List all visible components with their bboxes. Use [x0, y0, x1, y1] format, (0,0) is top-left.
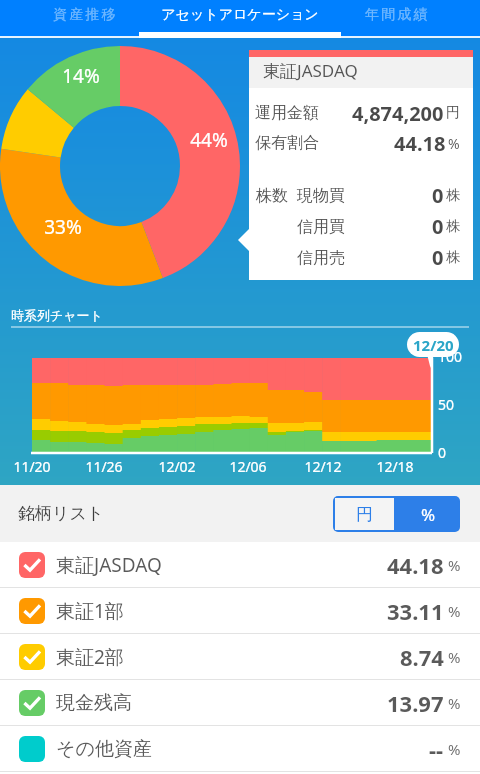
staticText: 33.11: [387, 596, 444, 626]
button[interactable]: 年間成績: [302, 0, 480, 30]
staticText: 時系列チャート: [11, 307, 103, 323]
button[interactable]: 現金残高: [0, 680, 480, 725]
staticText: %: [448, 134, 460, 153]
staticText: 0: [432, 182, 444, 209]
staticText: 運用金額: [255, 103, 319, 123]
staticText: 資産推移: [53, 6, 118, 24]
staticText: 円: [356, 504, 373, 525]
staticText: 12/02: [158, 457, 196, 476]
staticText: その他資産: [56, 737, 152, 761]
staticText: 株数: [256, 186, 288, 206]
button[interactable]: 資産推移: [0, 0, 180, 30]
staticText: 14%: [62, 63, 100, 89]
staticText: 13.97: [387, 688, 444, 718]
button[interactable]: アセットアロケーション: [145, 0, 335, 30]
staticText: 12/06: [229, 457, 267, 476]
staticText: 信用売: [297, 248, 345, 268]
staticText: 株: [446, 187, 460, 205]
staticText: 8.74: [400, 642, 444, 672]
staticText: 100: [438, 347, 463, 366]
staticText: 現金残高: [56, 691, 132, 715]
staticText: 0: [438, 443, 447, 462]
button[interactable]: 円: [335, 498, 394, 530]
staticText: 12/18: [376, 457, 414, 476]
staticText: 東証JASDAQ: [56, 552, 162, 578]
staticText: 44%: [190, 127, 228, 153]
button[interactable]: %: [396, 496, 460, 532]
staticText: 銘柄リスト: [18, 503, 105, 524]
staticText: 12/20: [413, 335, 454, 355]
staticText: %: [448, 555, 461, 575]
staticText: 44.18: [387, 550, 444, 580]
staticText: 円: [446, 104, 460, 122]
staticText: 50: [438, 395, 455, 414]
button[interactable]: 東証2部: [0, 634, 480, 679]
staticText: 信用買: [297, 217, 345, 237]
staticText: 東証JASDAQ: [263, 59, 358, 82]
staticText: 11/20: [13, 457, 51, 476]
staticText: %: [448, 601, 461, 621]
staticText: --: [429, 734, 444, 764]
staticText: 年間成績: [365, 6, 430, 24]
staticText: %: [421, 503, 436, 526]
staticText: 0: [432, 213, 444, 240]
staticText: 12/12: [304, 457, 342, 476]
button[interactable]: 東証JASDAQ: [0, 542, 480, 587]
staticText: 株: [446, 218, 460, 236]
staticText: 11/26: [85, 457, 123, 476]
staticText: 保有割合: [255, 133, 319, 153]
staticText: 現物買: [297, 186, 345, 206]
staticText: 東証2部: [56, 644, 124, 670]
staticText: %: [448, 739, 461, 759]
staticText: %: [448, 647, 461, 667]
staticText: 東証1部: [56, 598, 124, 624]
staticText: %: [448, 693, 461, 713]
staticText: 44.18: [394, 130, 446, 157]
staticText: 0: [432, 244, 444, 271]
staticText: 4,874,200: [352, 100, 444, 127]
staticText: アセットアロケーション: [161, 6, 319, 24]
staticText: 33%: [44, 214, 82, 240]
button[interactable]: その他資産: [0, 726, 480, 771]
button[interactable]: 東証1部: [0, 588, 480, 633]
staticText: 株: [446, 249, 460, 267]
